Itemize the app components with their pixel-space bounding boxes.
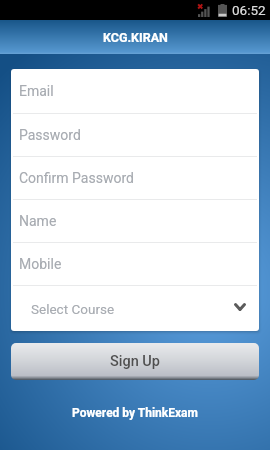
staticText: Name: [19, 213, 57, 229]
staticText: Powered by ThinkExam: [0, 406, 270, 420]
other: Open course list: [234, 303, 246, 311]
staticText: Confirm Password: [19, 170, 134, 186]
staticText: Email: [19, 83, 54, 99]
button[interactable]: Name: [11, 200, 259, 242]
button[interactable]: Select Course: [11, 286, 259, 331]
staticText: 06:52: [232, 2, 266, 18]
button[interactable]: Mobile: [11, 243, 259, 285]
button[interactable]: Sign Up: [11, 343, 259, 380]
button[interactable]: Password: [11, 114, 259, 156]
button[interactable]: Email: [11, 69, 259, 113]
staticText: KCG.KIRAN: [103, 30, 168, 45]
staticText: Sign Up: [110, 353, 161, 370]
staticText: Password: [19, 127, 81, 143]
staticText: Select Course: [31, 301, 115, 317]
staticText: Mobile: [19, 256, 62, 272]
button[interactable]: Confirm Password: [11, 157, 259, 199]
